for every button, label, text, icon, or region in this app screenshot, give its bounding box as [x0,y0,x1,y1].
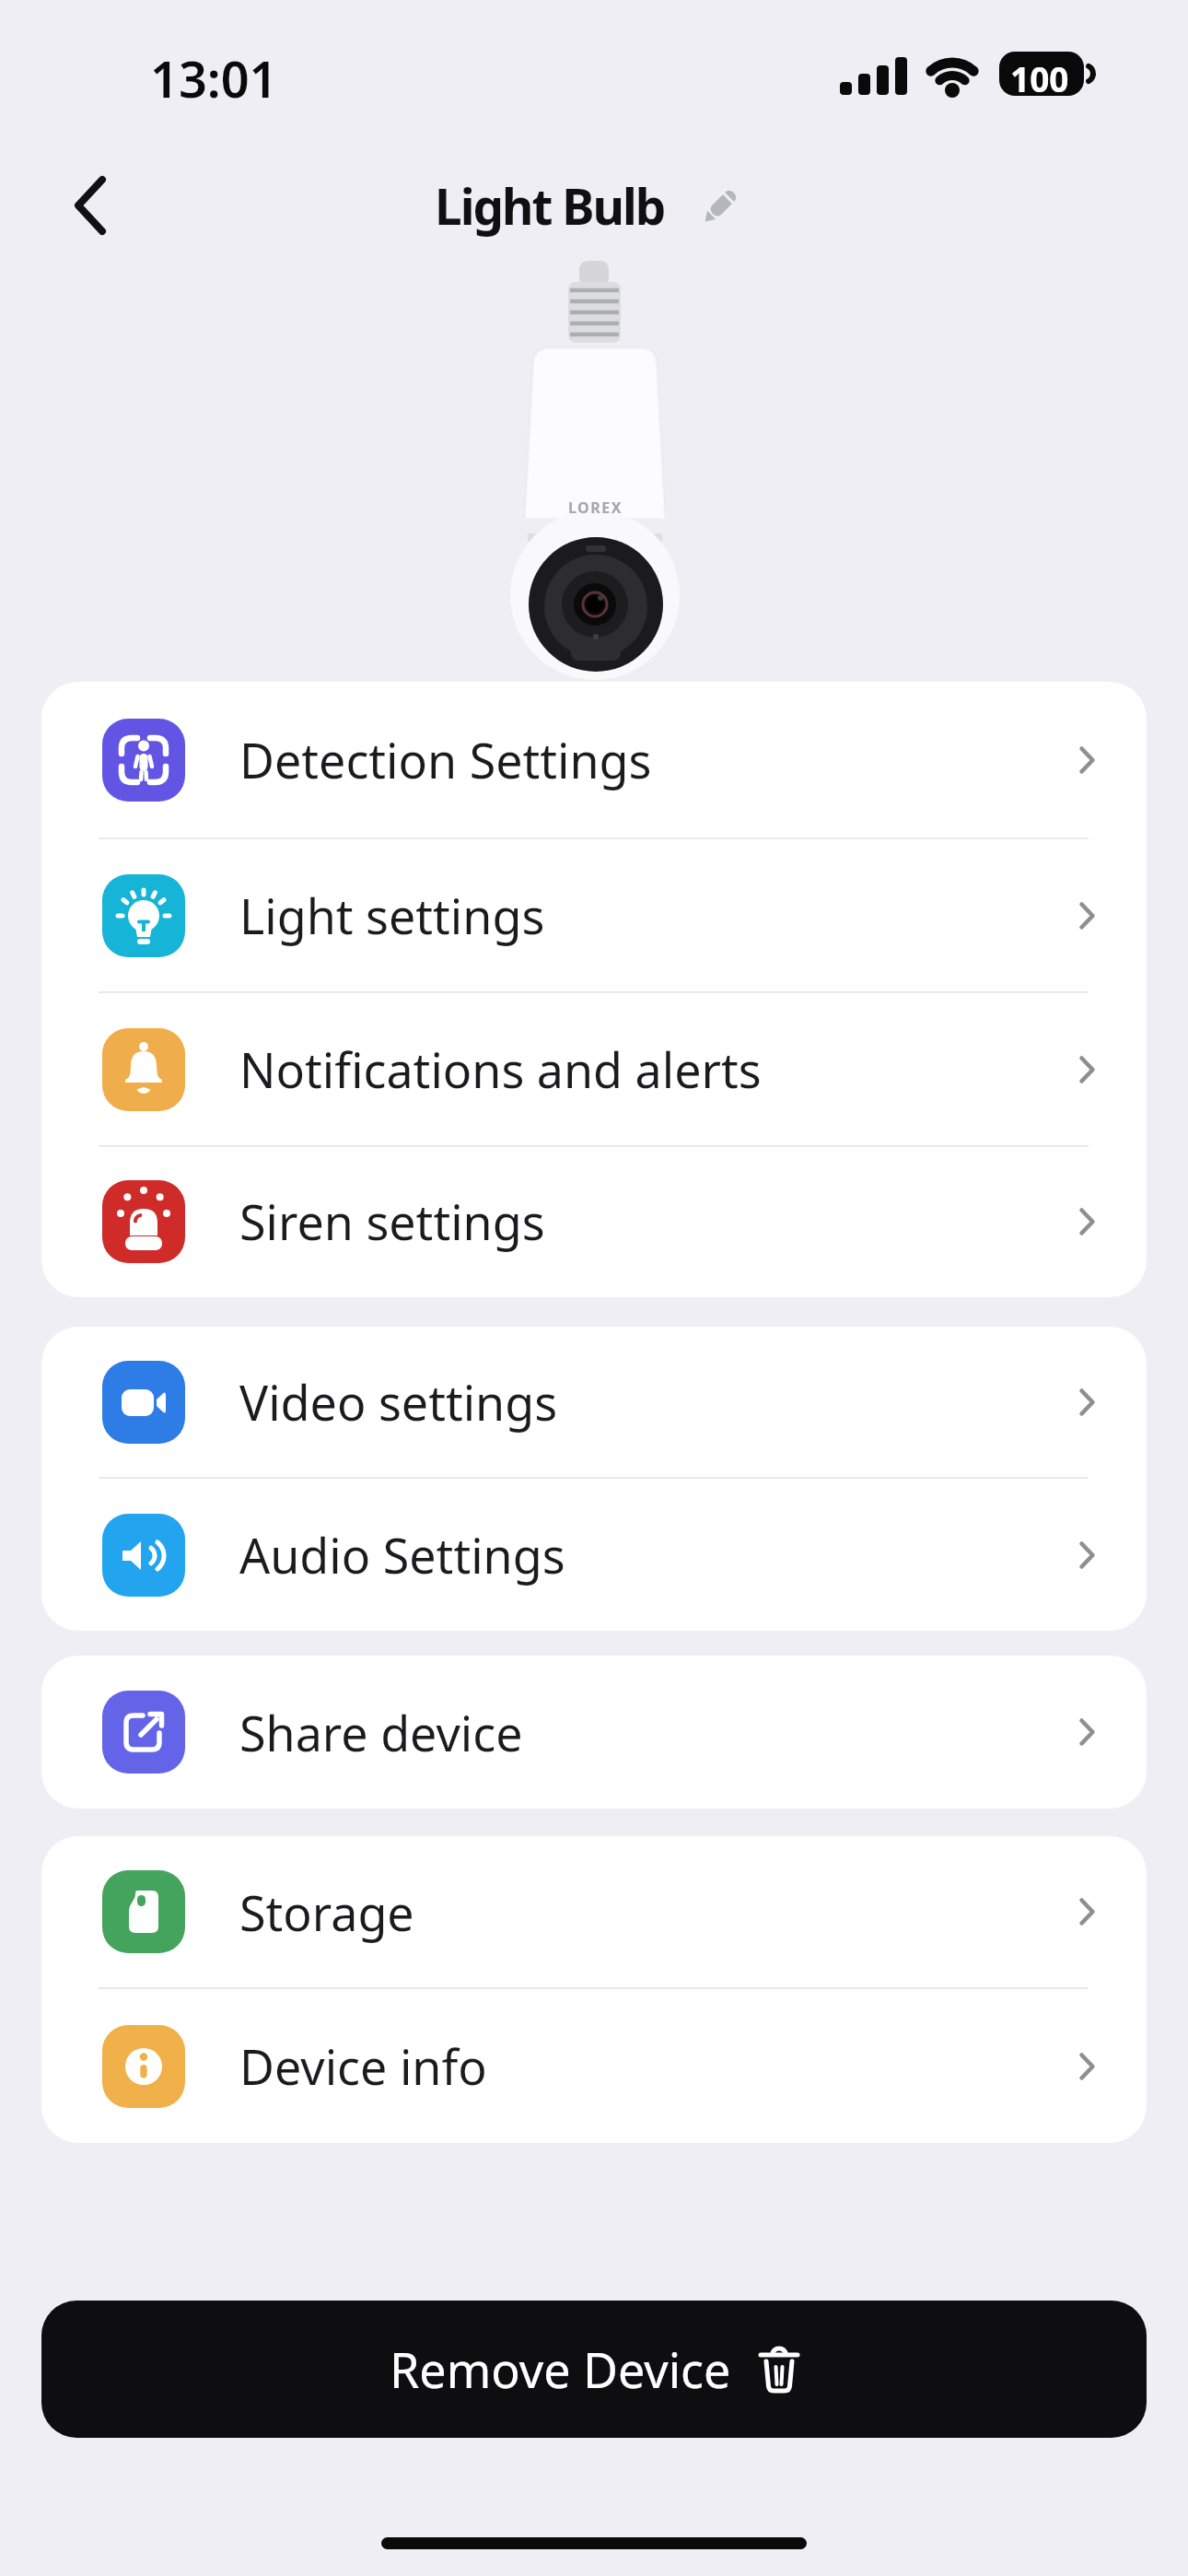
button[interactable]: Remove Device [41,2301,1147,2438]
button[interactable]: Audio Settings [41,1479,1147,1631]
button[interactable]: Device info [41,1989,1147,2143]
staticText: Audio Settings [239,1522,565,1587]
button[interactable]: Notifications and alerts [41,993,1147,1145]
staticText: Remove Device [390,2336,731,2402]
staticText: Light settings [239,883,545,948]
staticText: Share device [239,1700,523,1765]
button[interactable]: Light Bulb [435,172,739,239]
staticText: Detection Settings [239,727,652,792]
button[interactable]: Share device [41,1656,1147,1809]
staticText: Light Bulb [435,172,665,239]
button[interactable]: Light settings [41,839,1147,991]
button[interactable]: Storage [41,1836,1147,1987]
staticText: Device info [239,2033,487,2099]
button[interactable]: Video settings [41,1327,1147,1477]
staticText: LOREX [568,498,623,518]
staticText: 13:01 [150,44,278,112]
staticText: Siren settings [239,1188,545,1254]
button[interactable]: Siren settings [41,1147,1147,1295]
button[interactable]: Detection Settings [41,682,1147,837]
staticText: Storage [239,1879,414,1945]
button[interactable] [53,164,127,247]
staticText: 100 [1010,55,1069,101]
staticText: Video settings [239,1369,558,1434]
staticText: Notifications and alerts [239,1036,762,1102]
